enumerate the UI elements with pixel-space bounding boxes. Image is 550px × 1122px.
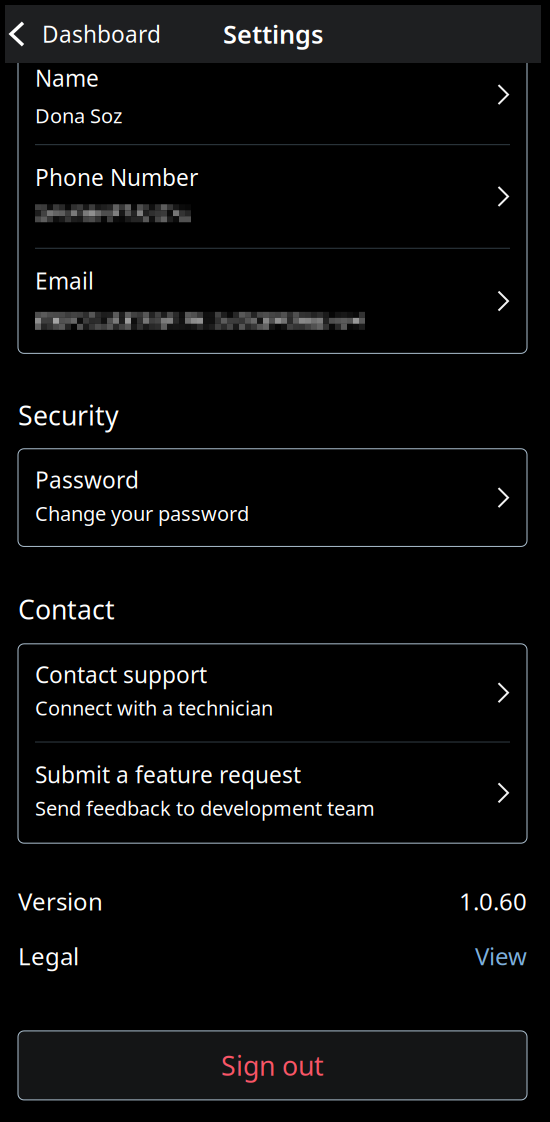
staticText: Dona Soz	[35, 102, 122, 129]
button[interactable]: Password	[18, 449, 527, 546]
staticText: Send feedback to development team	[35, 795, 375, 821]
staticText: Security	[18, 397, 119, 433]
button[interactable]: Name	[18, 63, 527, 144]
staticText: Settings	[223, 17, 323, 51]
staticText: Contact support	[35, 659, 207, 689]
staticText: Password	[35, 465, 139, 495]
button[interactable]: Dashboard	[5, 5, 161, 63]
staticText: Change your password	[35, 500, 249, 526]
button[interactable]: Phone Number	[18, 145, 527, 248]
staticText: Sign out	[221, 1048, 324, 1083]
staticText: 1.0.60	[459, 885, 527, 917]
staticText: View	[475, 940, 527, 972]
button[interactable]: Email	[18, 249, 527, 353]
staticText: Dashboard	[42, 19, 161, 49]
staticText: Contact	[18, 591, 115, 627]
button[interactable]: Submit a feature request	[18, 742, 527, 843]
button[interactable]: Sign out	[18, 1031, 527, 1100]
staticText: Version	[18, 885, 103, 917]
staticText: Submit a feature request	[35, 759, 301, 790]
staticText: Phone Number	[35, 162, 198, 192]
button[interactable]: Contact support	[18, 644, 527, 742]
staticText: Email	[35, 266, 94, 296]
staticText: Connect with a technician	[35, 694, 273, 721]
button[interactable]: Legal	[18, 940, 527, 972]
staticText: Name	[35, 63, 99, 93]
staticText: Legal	[18, 940, 79, 972]
